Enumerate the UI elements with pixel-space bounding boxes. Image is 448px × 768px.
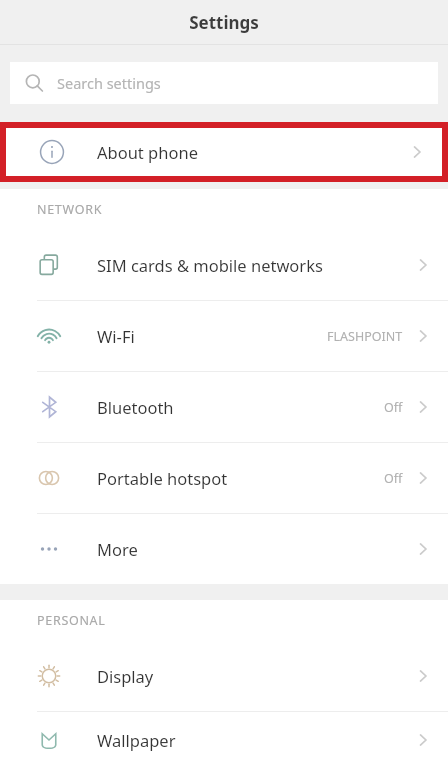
staticText: Settings [189,11,259,34]
staticText: SIM cards & mobile networks [97,254,323,276]
staticText: Search settings [57,73,161,93]
staticText: Off [384,399,403,416]
button[interactable]: About phone [6,128,442,176]
staticText: More [97,538,138,560]
staticText: Off [384,470,403,487]
staticText: About phone [97,141,198,163]
staticText: Wallpaper [97,729,176,751]
button[interactable]: Wi-Fi [0,301,448,371]
button[interactable]: Portable hotspot [0,443,448,513]
staticText: Bluetooth [97,396,174,418]
staticText: Display [97,665,154,687]
button[interactable]: Bluetooth [0,372,448,442]
staticText: Wi-Fi [97,325,135,347]
staticText: NETWORK [37,201,103,218]
staticText: FLASHPOINT [327,328,403,345]
button[interactable]: Search settings [10,62,438,104]
button[interactable]: SIM cards & mobile networks [0,230,448,300]
button[interactable]: Wallpaper [0,712,448,768]
staticText: PERSONAL [37,612,106,629]
staticText: Portable hotspot [97,467,228,489]
button[interactable]: Display [0,641,448,711]
button[interactable]: More [0,514,448,584]
